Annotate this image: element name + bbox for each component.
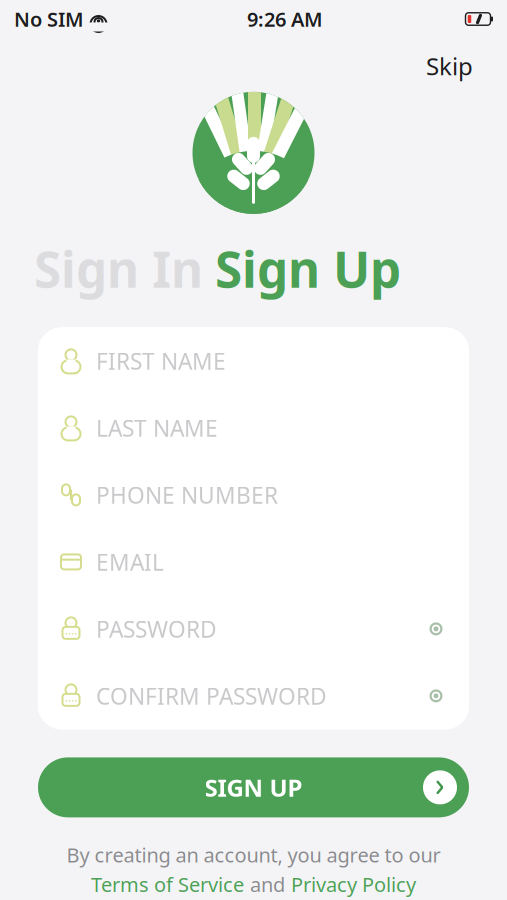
staticText: Terms of Service <box>91 871 244 897</box>
button[interactable]: CONFIRM PASSWORD <box>38 662 469 729</box>
staticText: Skip <box>426 50 473 82</box>
button[interactable]: SIGN UP <box>38 757 469 817</box>
button[interactable]: Terms of Service <box>91 871 244 897</box>
button[interactable]: PHONE NUMBER <box>38 461 469 528</box>
staticText: and <box>250 871 285 897</box>
button[interactable]: FIRST NAME <box>38 327 469 394</box>
button[interactable]: Privacy Policy <box>291 871 416 897</box>
button[interactable]: Skip <box>410 42 489 90</box>
staticText: Sign Up <box>215 236 401 301</box>
staticText: SIGN UP <box>204 771 302 803</box>
button[interactable]: PASSWORD <box>38 595 469 662</box>
button[interactable]: Sign Up <box>215 236 401 301</box>
staticText: By creating an account, you agree to our <box>66 841 440 868</box>
staticText: LAST NAME <box>96 413 218 443</box>
staticText: EMAIL <box>96 547 164 577</box>
staticText: PASSWORD <box>96 614 217 644</box>
staticText: No SIM <box>14 6 84 32</box>
button[interactable]: Sign In <box>34 236 203 301</box>
staticText: 9:26 AM <box>247 6 323 32</box>
staticText: Sign In <box>34 236 203 301</box>
staticText: PHONE NUMBER <box>96 480 278 510</box>
staticText: FIRST NAME <box>96 346 226 376</box>
staticText: Privacy Policy <box>291 871 416 897</box>
button[interactable]: EMAIL <box>38 528 469 595</box>
button[interactable]: LAST NAME <box>38 394 469 461</box>
staticText: CONFIRM PASSWORD <box>96 681 327 711</box>
